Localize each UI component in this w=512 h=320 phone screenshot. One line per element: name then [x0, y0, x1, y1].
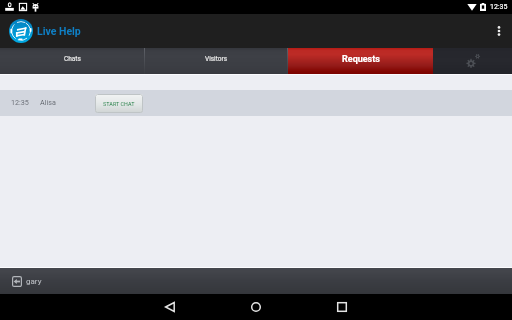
- button[interactable]: Recent apps: [320, 294, 364, 320]
- button[interactable]: Chats: [0, 48, 144, 74]
- button[interactable]: gary: [12, 276, 42, 287]
- staticText: Chats: [64, 55, 81, 63]
- staticText: Live Help: [37, 25, 81, 37]
- staticText: Alisa: [40, 98, 56, 106]
- button[interactable]: Home: [234, 294, 278, 320]
- button[interactable]: More options: [486, 14, 512, 48]
- button[interactable]: Back: [148, 294, 192, 320]
- button[interactable]: Settings: [433, 48, 512, 74]
- button[interactable]: Requests: [288, 48, 433, 74]
- staticText: Requests: [342, 54, 380, 65]
- button[interactable]: 12:35: [0, 90, 512, 116]
- button[interactable]: Visitors: [145, 48, 287, 74]
- staticText: Visitors: [205, 55, 227, 63]
- staticText: 12:35: [490, 3, 508, 11]
- staticText: gary: [26, 277, 42, 286]
- staticText: 12:35: [11, 98, 29, 106]
- button[interactable]: START CHAT: [95, 94, 143, 113]
- staticText: START CHAT: [103, 101, 135, 107]
